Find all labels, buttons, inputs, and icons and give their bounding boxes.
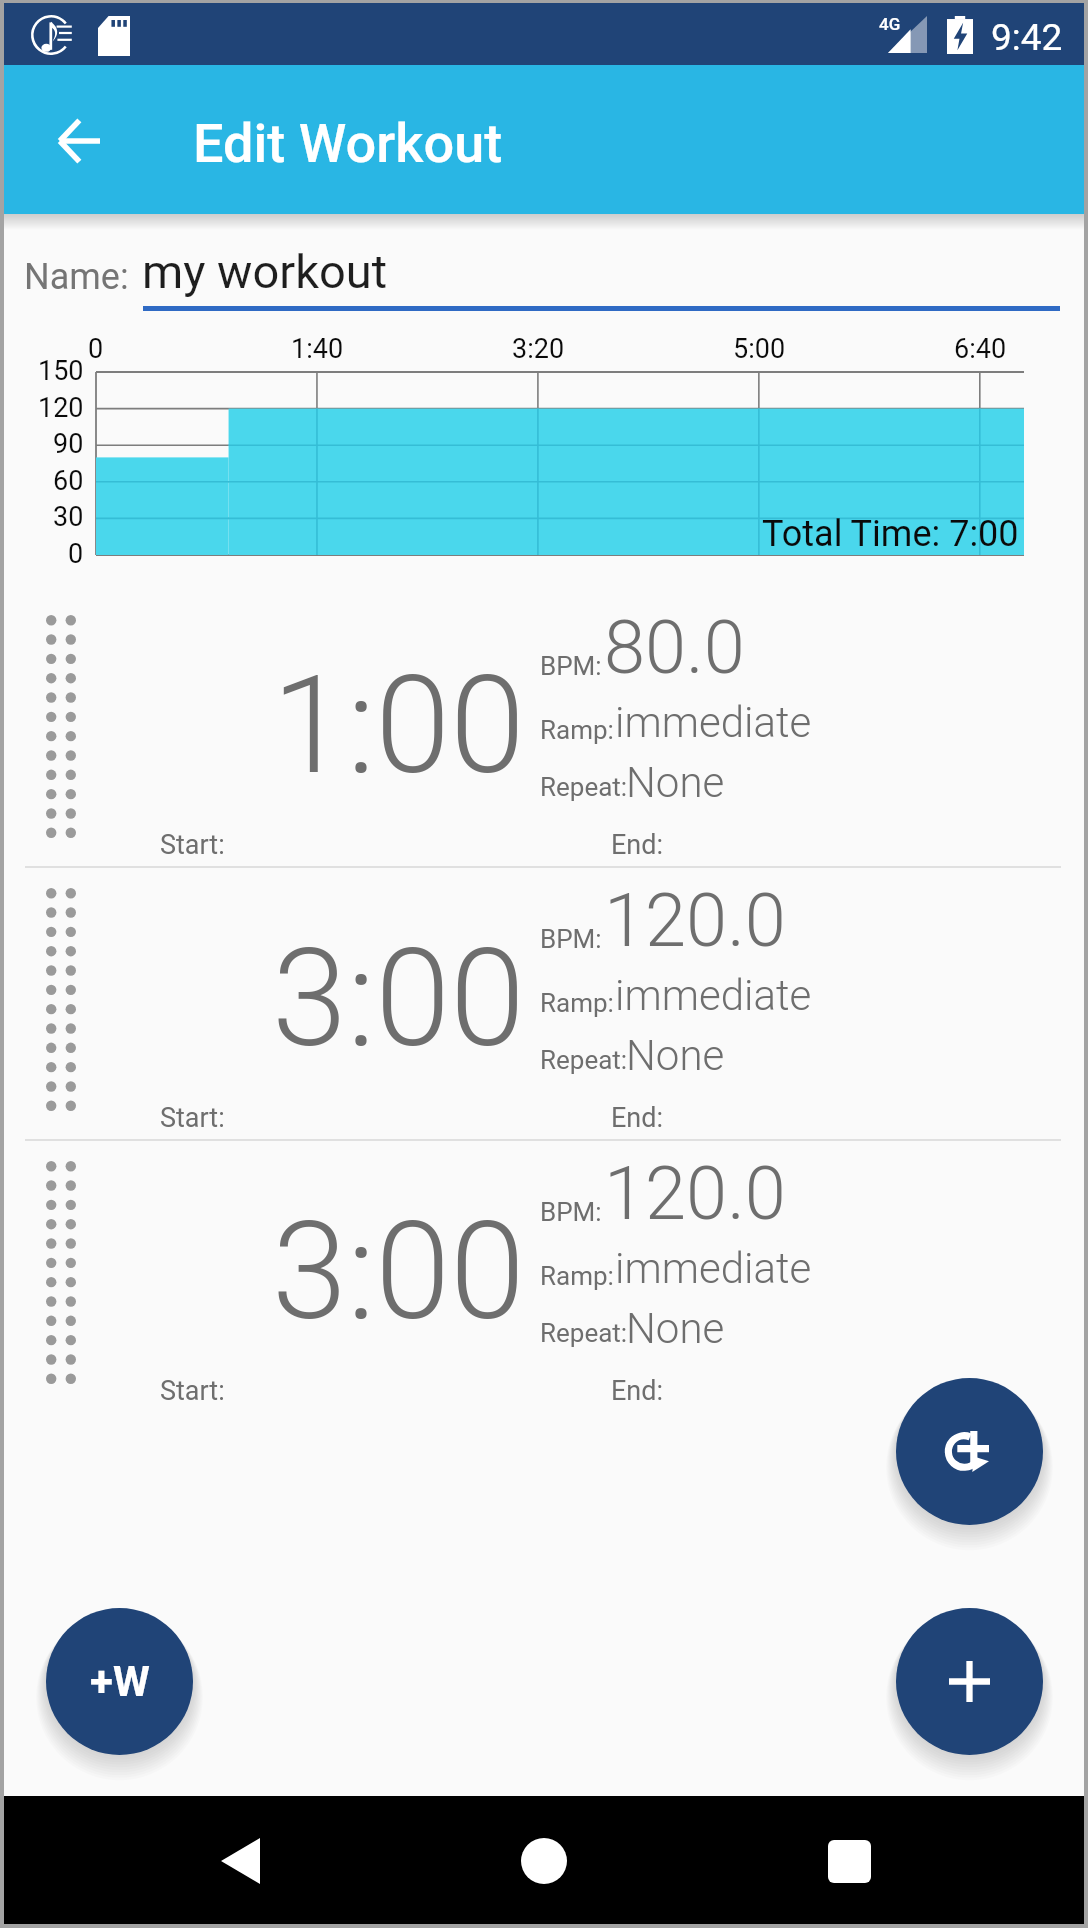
- staticText: 30: [53, 501, 84, 533]
- staticText: 0: [68, 538, 84, 570]
- staticText: 3:20: [512, 333, 565, 361]
- button[interactable]: +W: [46, 1608, 193, 1755]
- staticText: 1:00: [272, 647, 525, 787]
- staticText: immediate: [615, 1244, 812, 1293]
- staticText: End:: [611, 829, 664, 861]
- staticText: BPM:: [540, 924, 602, 954]
- staticText: Start:: [160, 829, 225, 861]
- staticText: immediate: [615, 971, 812, 1020]
- staticText: 1:40: [291, 333, 344, 361]
- staticText: Repeat:: [540, 772, 628, 802]
- staticText: 90: [53, 428, 84, 460]
- staticText: End:: [611, 1375, 664, 1407]
- staticText: my workout: [142, 244, 388, 299]
- staticText: Start:: [160, 1375, 225, 1407]
- staticText: +W: [90, 1657, 150, 1706]
- staticText: 80.0: [604, 604, 745, 691]
- staticText: Name:: [24, 256, 129, 298]
- staticText: Repeat:: [540, 1318, 628, 1348]
- staticText: 120.0: [604, 877, 786, 964]
- staticText: Total Time: 7:00: [762, 513, 1019, 555]
- staticText: Edit Workout: [193, 112, 503, 175]
- button[interactable]: Back: [200, 1821, 280, 1901]
- staticText: immediate: [615, 698, 812, 747]
- staticText: Ramp:: [540, 1261, 614, 1291]
- staticText: BPM:: [540, 651, 602, 681]
- staticText: 150: [38, 355, 84, 387]
- button[interactable]: Recents: [809, 1821, 889, 1901]
- staticText: 6:40: [954, 333, 1007, 361]
- staticText: Repeat:: [540, 1045, 628, 1075]
- staticText: End:: [611, 1102, 664, 1134]
- staticText: 3:00: [272, 920, 525, 1060]
- button[interactable]: Add repeat: [896, 1378, 1043, 1525]
- staticText: None: [626, 758, 725, 807]
- staticText: None: [626, 1031, 725, 1080]
- staticText: None: [626, 1304, 725, 1353]
- staticText: 4G: [879, 14, 901, 34]
- staticText: Ramp:: [540, 988, 614, 1018]
- staticText: 120: [38, 392, 84, 424]
- staticText: 5:00: [733, 333, 786, 361]
- staticText: BPM:: [540, 1197, 602, 1227]
- staticText: 120.0: [604, 1150, 786, 1237]
- button[interactable]: Add interval: [896, 1608, 1043, 1755]
- staticText: 0: [88, 333, 104, 361]
- staticText: Ramp:: [540, 715, 614, 745]
- button[interactable]: Back: [35, 98, 121, 184]
- staticText: Start:: [160, 1102, 225, 1134]
- staticText: 3:00: [272, 1193, 525, 1333]
- staticText: 9:42: [991, 16, 1063, 59]
- button[interactable]: Home: [504, 1821, 584, 1901]
- staticText: 60: [53, 465, 84, 497]
